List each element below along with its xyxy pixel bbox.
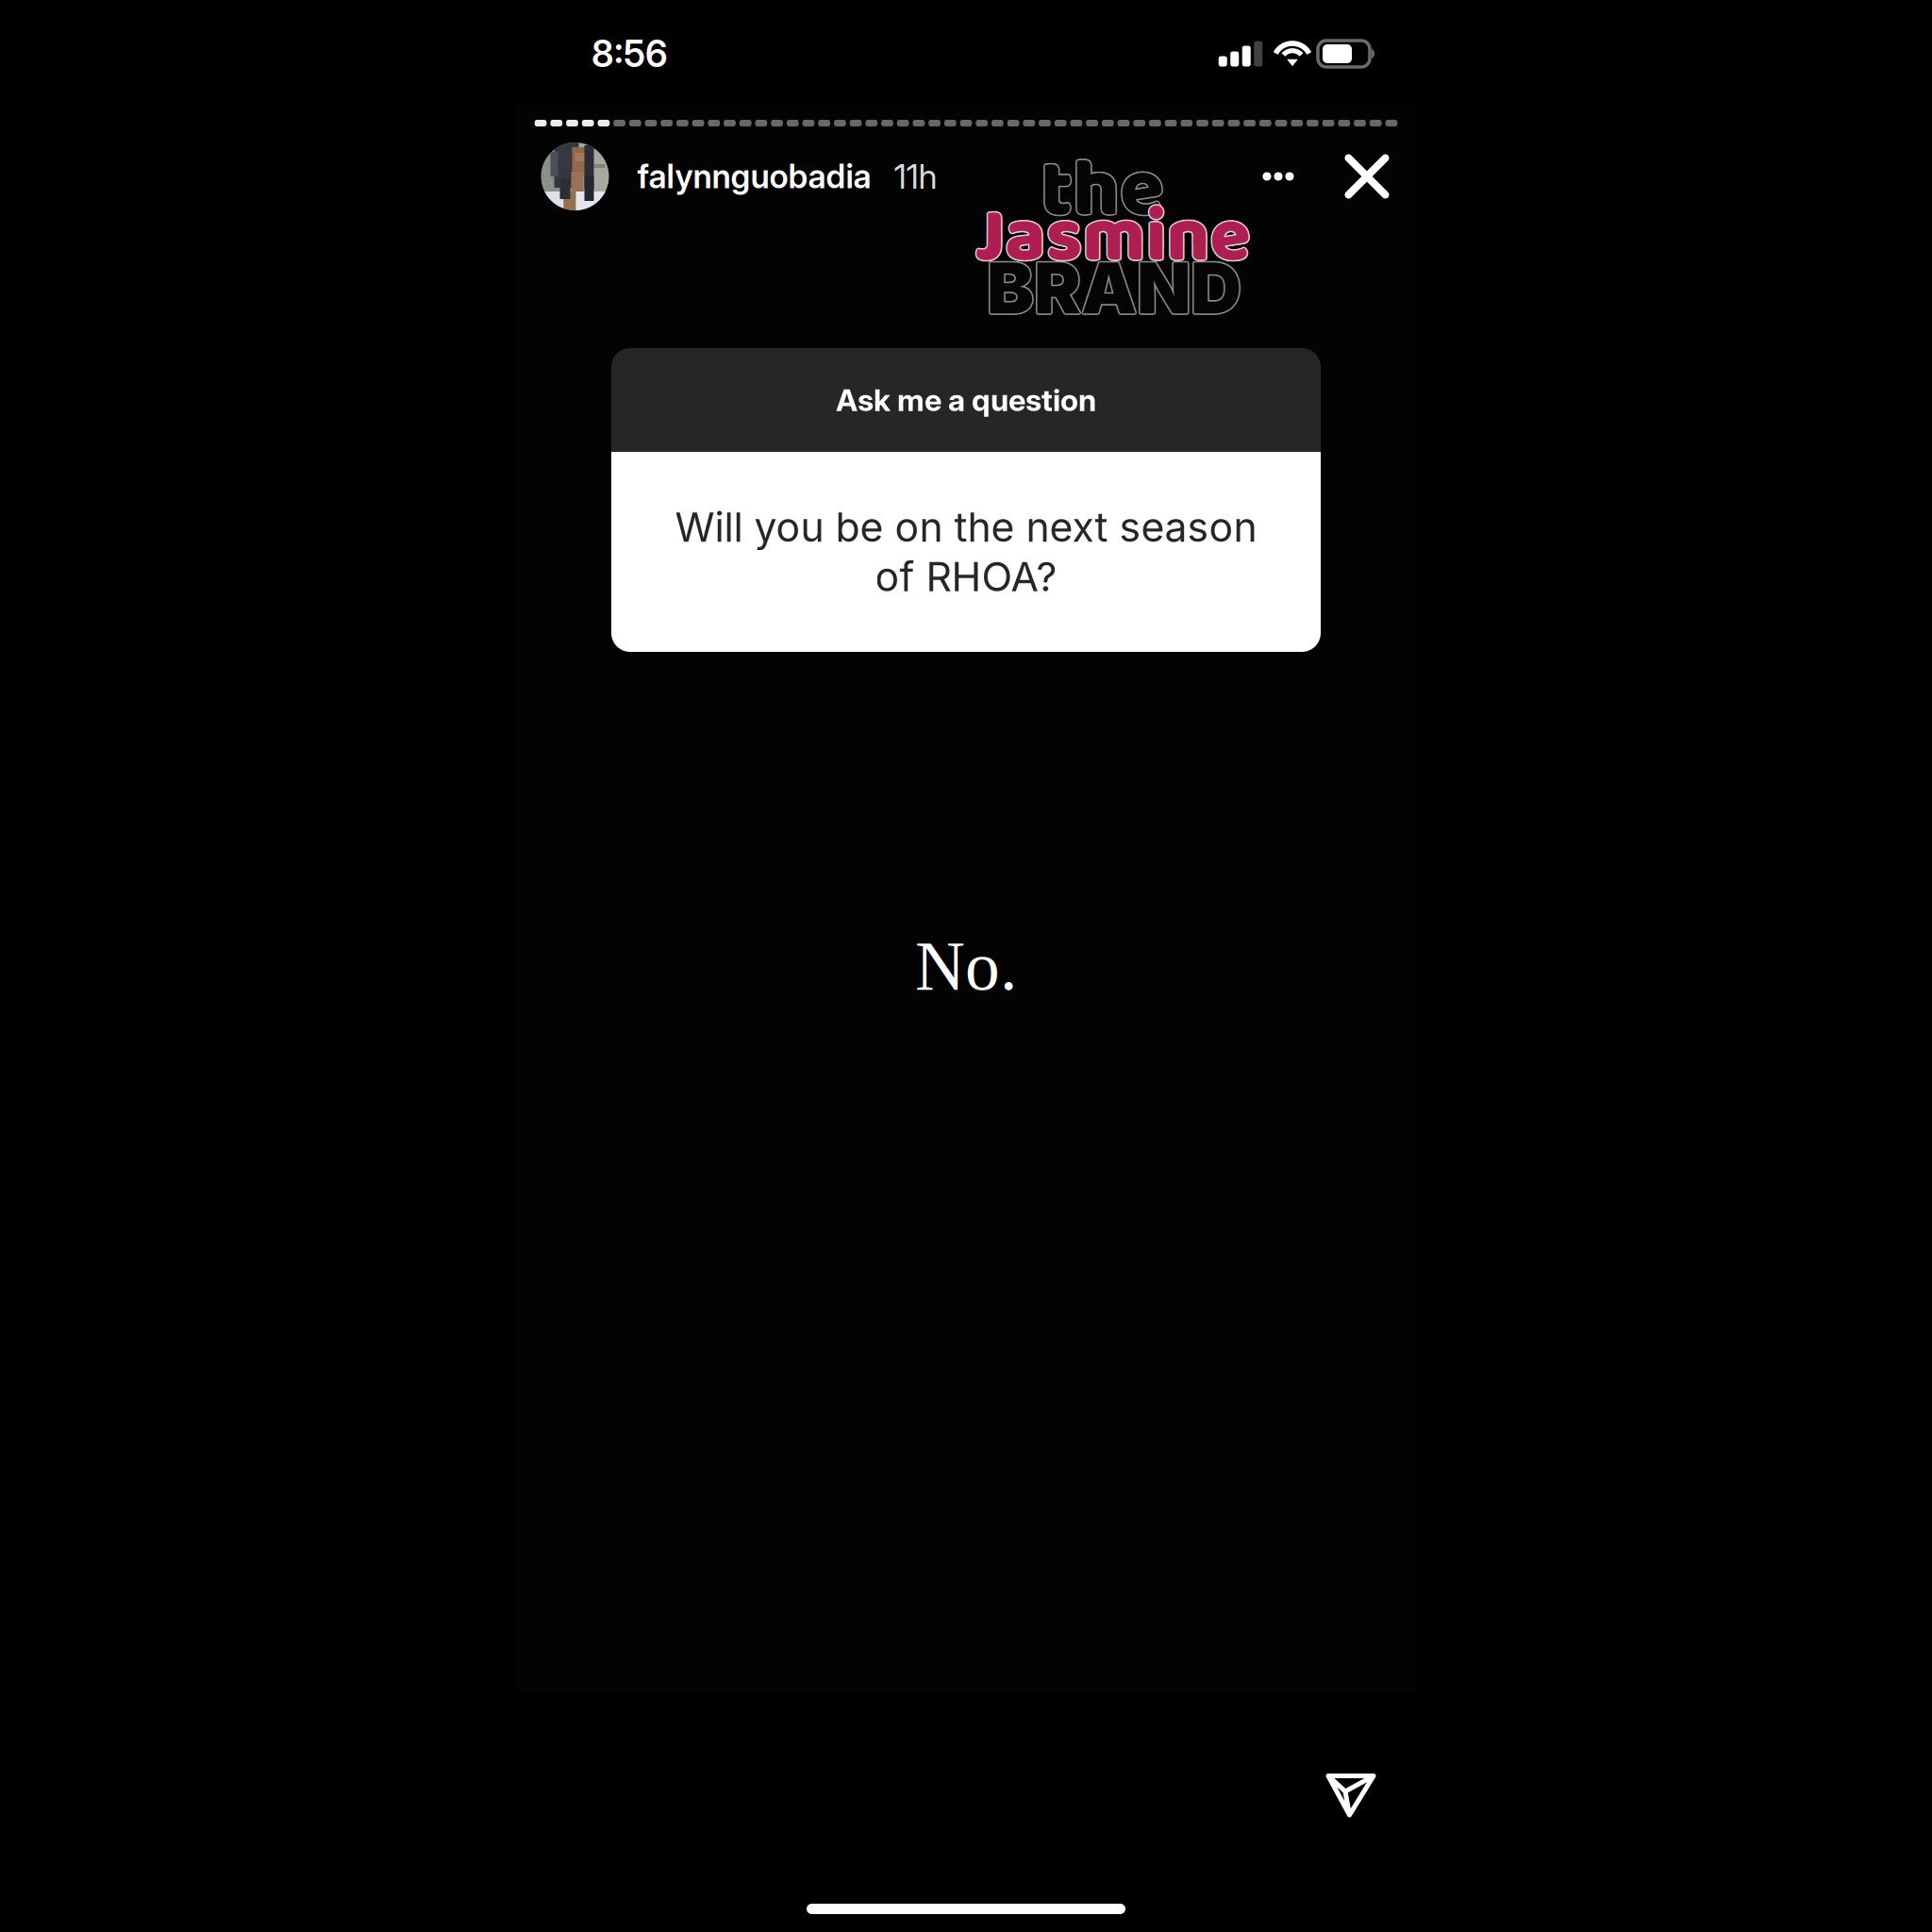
staticText: Jasmine (975, 181, 1250, 300)
staticText: No. (915, 928, 1017, 1005)
button[interactable]: More options (1263, 152, 1294, 200)
staticText: Jasmine (974, 178, 1249, 297)
staticText: the (1042, 128, 1165, 257)
staticText: of RHOA? (875, 552, 1057, 601)
staticText: Will you be on the next season (675, 503, 1257, 551)
button[interactable]: Send message (1325, 1773, 1376, 1819)
staticText: the (1041, 127, 1164, 256)
staticText: the (1042, 126, 1165, 255)
staticText: BRAND (988, 244, 1242, 329)
button[interactable]: Close story (1343, 152, 1391, 200)
staticText: Jasmine (975, 179, 1250, 298)
staticText: Jasmine (976, 179, 1252, 298)
staticText: the (1041, 126, 1164, 255)
staticText: 8:56 (591, 32, 668, 76)
staticText: falynnguobadia (637, 157, 871, 196)
staticText: the (1039, 128, 1163, 257)
staticText: Jasmine (974, 180, 1249, 299)
button[interactable]: falynnguobadia (541, 143, 937, 209)
staticText: BRAND (987, 246, 1241, 332)
staticText: BRAND (988, 245, 1243, 330)
staticText: Jasmine (976, 178, 1251, 297)
staticText: Jasmine (974, 179, 1249, 298)
staticText: BRAND (987, 245, 1241, 330)
staticText: the (1041, 128, 1164, 257)
staticText: Jasmine (976, 180, 1251, 299)
staticText: the (1039, 126, 1163, 255)
staticText: BRAND (987, 244, 1241, 329)
staticText: BRAND (986, 246, 1240, 331)
staticText: Jasmine (975, 178, 1250, 297)
staticText: BRAND (986, 244, 1240, 329)
staticText: 11h (894, 156, 937, 197)
staticText: the (1039, 127, 1163, 256)
staticText: Ask me a question (836, 382, 1096, 418)
staticText: BRAND (985, 245, 1240, 330)
staticText: the (1042, 127, 1166, 256)
staticText: BRAND (988, 246, 1242, 331)
